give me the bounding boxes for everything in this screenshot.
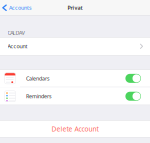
button[interactable]: Accounts [0,0,37,15]
button[interactable]: Calendars [0,69,150,87]
staticText: Privat [67,4,82,11]
staticText: Calendars [26,75,50,82]
staticText: Accounts [9,4,32,11]
staticText: Delete Account [51,124,98,133]
staticText: Account [7,43,27,50]
staticText: CALDAV [7,29,25,36]
button[interactable]: Delete Account [0,120,150,137]
button[interactable]: Reminders [0,87,150,105]
staticText: Reminders [26,93,52,100]
button[interactable]: Account [0,37,150,56]
